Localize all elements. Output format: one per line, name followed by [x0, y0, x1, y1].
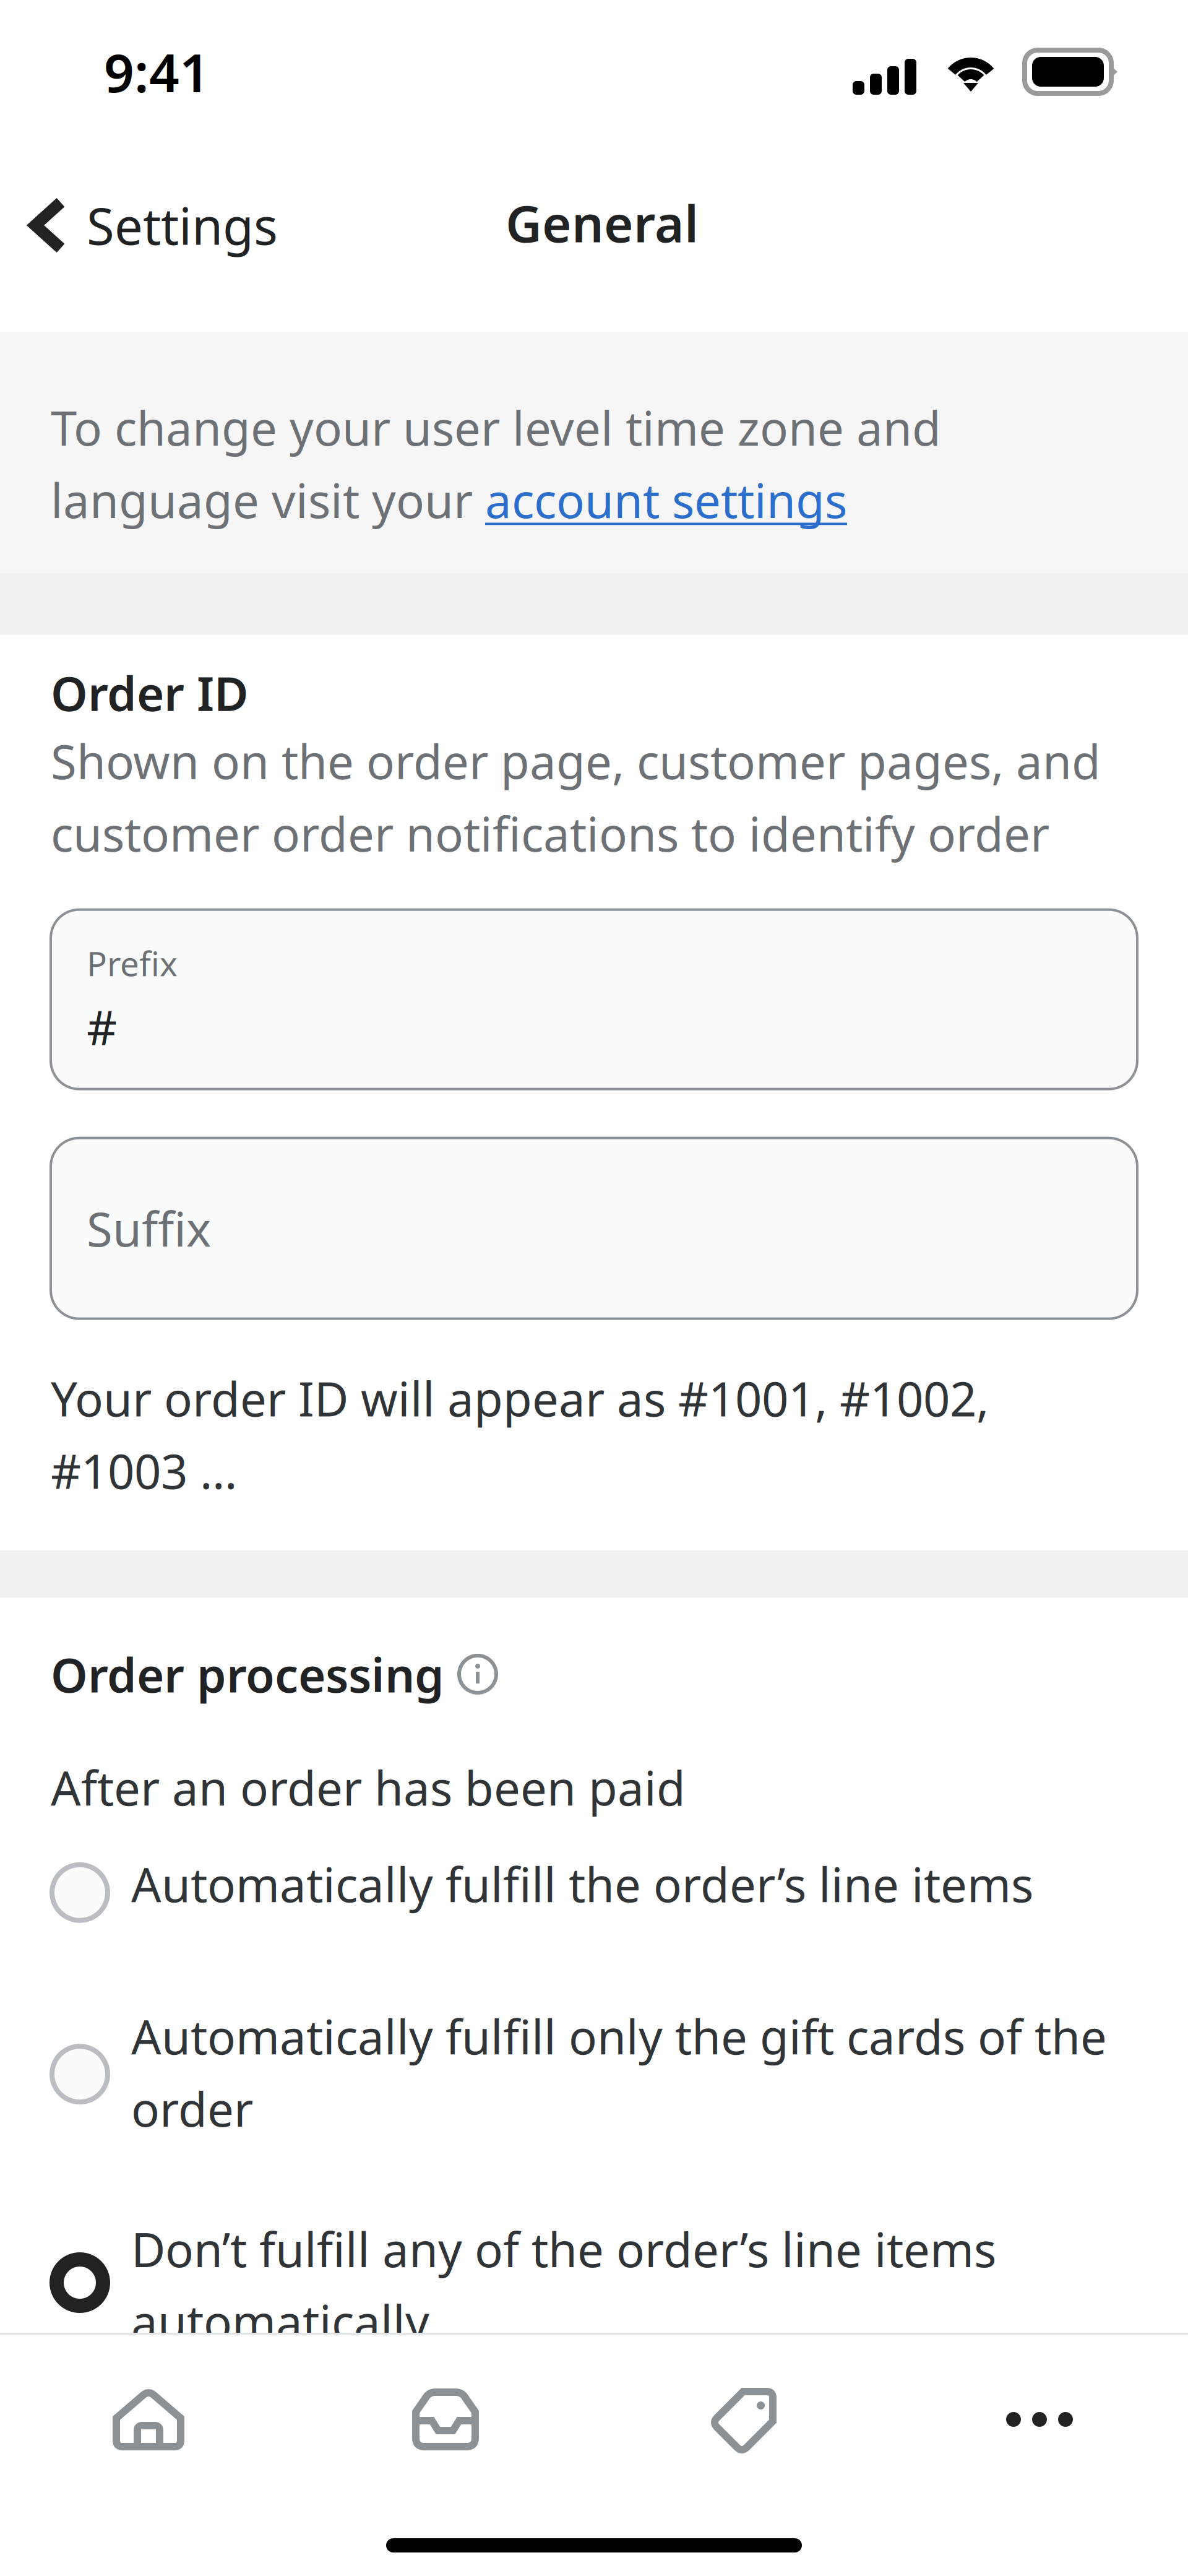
button[interactable]: Automatically fulfill the order’s line i… [0, 1853, 1188, 1915]
staticText: General [506, 189, 699, 256]
staticText: Order ID [51, 662, 249, 724]
staticText: # [87, 996, 117, 1058]
button[interactable]: Home [0, 2370, 297, 2469]
staticText: Order processing [51, 1643, 444, 1705]
button[interactable]: Prefix [51, 910, 1137, 1089]
button[interactable]: Automatically fulfill only the gift card… [0, 2005, 1188, 2140]
staticText: Shown on the order page, customer pages,… [51, 730, 1101, 864]
button[interactable]: To change your user level time zone and … [0, 332, 1188, 573]
button[interactable]: About order processing [458, 1654, 497, 1694]
staticText: Your order ID will appear as #1001, #100… [51, 1367, 989, 1502]
button[interactable]: Orders [297, 2370, 594, 2469]
staticText: Prefix [87, 941, 178, 986]
staticText: Automatically fulfill the order’s line i… [131, 1853, 1033, 1915]
staticText: Settings [87, 192, 278, 259]
staticText: Suffix [87, 1197, 211, 1260]
button[interactable]: Settings [0, 178, 322, 272]
staticText: Automatically fulfill only the gift card… [131, 2005, 1107, 2140]
staticText: To change your user level time zone and … [51, 396, 941, 531]
button[interactable]: Products [594, 2370, 891, 2469]
button[interactable]: Don’t fulfill any of the order’s line it… [0, 2218, 1188, 2353]
staticText: 9:41 [104, 37, 210, 107]
button[interactable]: More [891, 2370, 1188, 2469]
staticText: Don’t fulfill any of the order’s line it… [131, 2218, 996, 2353]
button[interactable]: Suffix [51, 1138, 1137, 1319]
staticText: After an order has been paid [51, 1756, 686, 1819]
